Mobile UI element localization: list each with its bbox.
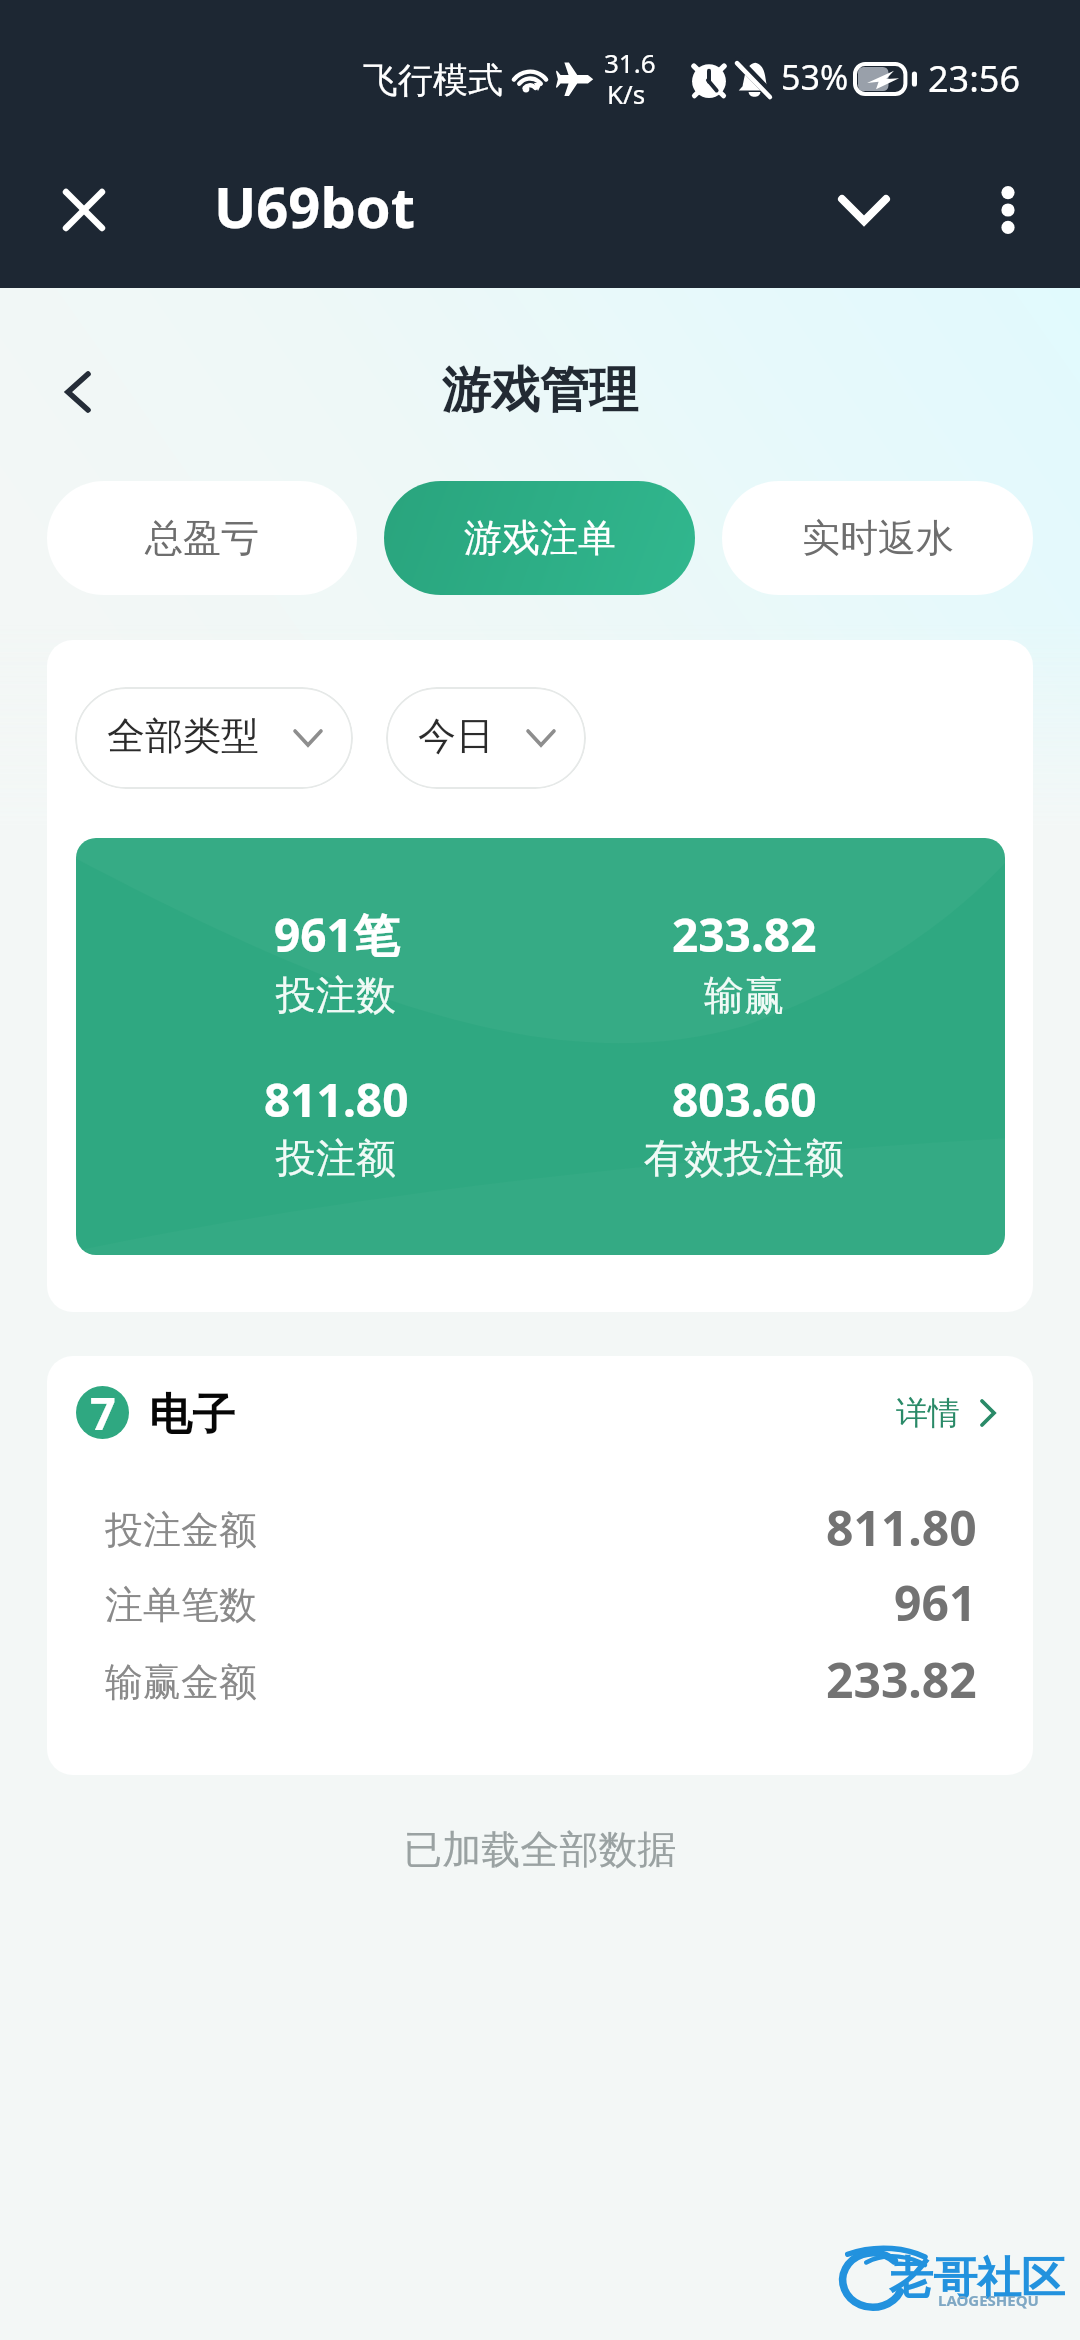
staticText: 输赢金额	[105, 1658, 257, 1706]
staticText: 31.6	[604, 45, 656, 80]
staticText: 老哥社区	[889, 2251, 1065, 2306]
button[interactable]: 注单笔数	[47, 1548, 1033, 1624]
staticText: 23:56	[928, 54, 1021, 103]
staticText: 有效投注额	[644, 1133, 844, 1183]
button[interactable]: 投注金额	[47, 1473, 1033, 1549]
staticText: 详情	[896, 1393, 960, 1433]
staticText: 输赢	[704, 970, 784, 1020]
button[interactable]: Close	[40, 164, 128, 252]
staticText: 811.80	[826, 1495, 977, 1560]
staticText: U69bot	[214, 168, 416, 244]
button[interactable]: Expand	[820, 166, 908, 254]
staticText: 总盈亏	[145, 514, 259, 562]
staticText: LAOGESHEQU	[938, 2290, 1039, 2310]
staticText: 飞行模式	[363, 58, 503, 102]
staticText: 7	[90, 1386, 116, 1435]
staticText: 803.60	[672, 1068, 817, 1131]
staticText: 游戏注单	[464, 514, 616, 562]
button[interactable]: 今日	[386, 687, 586, 789]
button[interactable]: 实时返水	[722, 481, 1033, 595]
staticText: 全部类型	[107, 712, 259, 760]
staticText: 53%	[781, 54, 849, 100]
staticText: 注单笔数	[105, 1581, 257, 1629]
staticText: 961	[894, 1570, 977, 1635]
staticText: 电子	[149, 1388, 235, 1442]
button[interactable]: 输赢金额	[47, 1625, 1033, 1701]
staticText: 233.82	[672, 903, 817, 966]
button[interactable]: 总盈亏	[47, 481, 357, 595]
button[interactable]: Back	[48, 362, 108, 422]
staticText: K/s	[607, 76, 646, 111]
staticText: 961笔	[274, 903, 399, 966]
button[interactable]: 7	[75, 1376, 375, 1448]
staticText: 游戏管理	[0, 360, 1080, 422]
staticText: 已加载全部数据	[0, 1825, 1080, 1874]
staticText: 投注数	[276, 970, 396, 1020]
staticText: 今日	[418, 712, 494, 760]
staticText: 233.82	[826, 1647, 977, 1712]
staticText: 投注额	[276, 1133, 396, 1183]
staticText: 811.80	[264, 1068, 409, 1131]
button[interactable]: 全部类型	[75, 687, 353, 789]
button[interactable]: More options	[966, 166, 1050, 250]
button[interactable]: 游戏注单	[384, 481, 695, 595]
staticText: 投注金额	[105, 1506, 257, 1554]
staticText: 实时返水	[802, 514, 954, 562]
button[interactable]: 详情	[896, 1379, 1033, 1451]
